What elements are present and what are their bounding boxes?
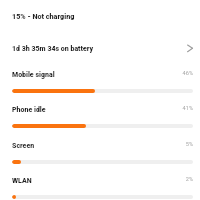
staticText: 1d 3h 35m 34s on battery bbox=[12, 45, 94, 53]
staticText: 15% - Not charging bbox=[12, 12, 75, 20]
staticText: Screen bbox=[12, 142, 35, 150]
staticText: 41% bbox=[12, 105, 193, 112]
staticText: 2% bbox=[12, 176, 193, 183]
other: Battery details bbox=[184, 42, 194, 52]
staticText: Phone idle bbox=[12, 106, 46, 114]
button[interactable]: WLAN bbox=[0, 171, 200, 199]
button[interactable]: Mobile signal bbox=[0, 65, 200, 93]
button[interactable]: 1d 3h 35m 34s on battery bbox=[0, 36, 200, 58]
staticText: WLAN bbox=[12, 177, 32, 185]
staticText: 46% bbox=[12, 70, 193, 77]
button[interactable]: Phone idle bbox=[0, 100, 200, 128]
staticText: Mobile signal bbox=[12, 71, 55, 79]
button[interactable]: Screen bbox=[0, 136, 200, 164]
staticText: 5% bbox=[12, 141, 193, 148]
